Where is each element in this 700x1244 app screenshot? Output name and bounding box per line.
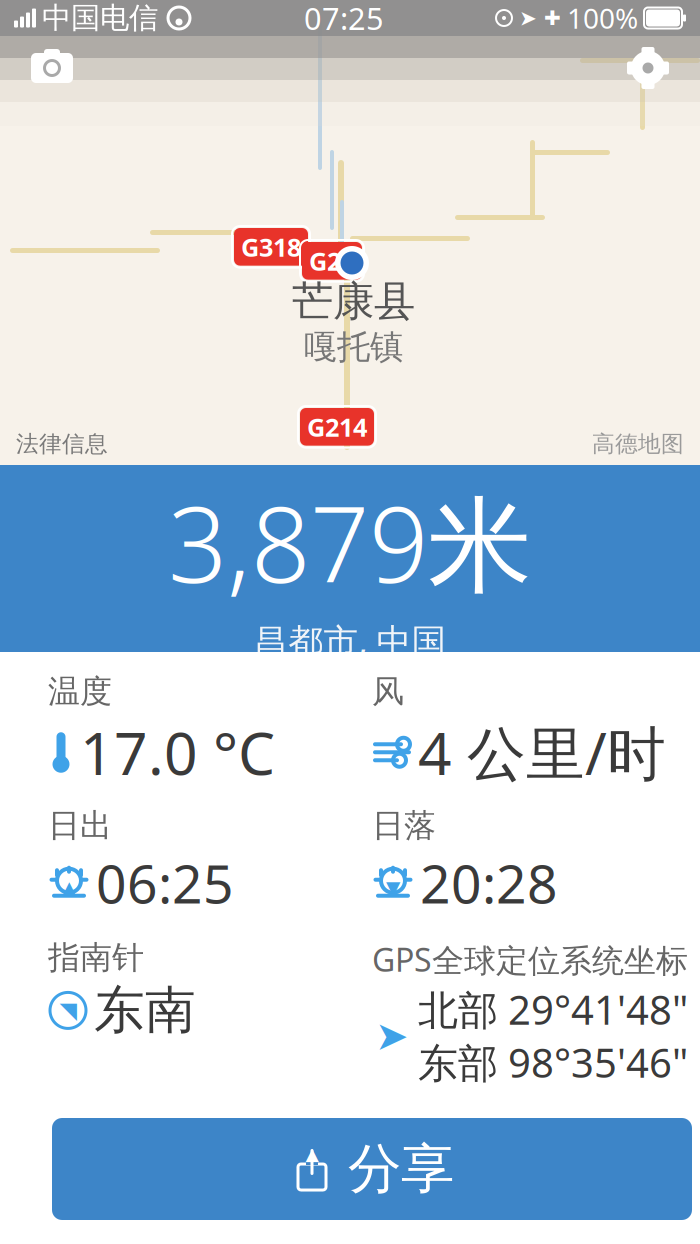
staticText: G214 bbox=[307, 410, 367, 444]
button[interactable]: ▲ bbox=[52, 1118, 692, 1220]
staticText: G318 bbox=[241, 230, 301, 264]
staticText: 东部 98°35'46" bbox=[418, 1036, 688, 1089]
staticText: 日出 bbox=[48, 806, 112, 845]
staticText: 指南针 bbox=[48, 938, 144, 977]
staticText: 昌都市, 中国 bbox=[253, 617, 446, 663]
staticText: 07:25 bbox=[304, 0, 384, 38]
staticText: 日落 bbox=[372, 806, 436, 845]
staticText: ➤ bbox=[375, 1013, 409, 1058]
staticText: ✚ bbox=[544, 7, 561, 29]
staticText: 北部 29°41'48" bbox=[418, 983, 688, 1036]
staticText: 东南 bbox=[94, 979, 196, 1041]
staticText: 法律信息 bbox=[16, 430, 108, 458]
staticText: 3,879米 bbox=[168, 473, 532, 611]
staticText: 风 bbox=[372, 672, 404, 711]
staticText: 芒康县 bbox=[292, 276, 415, 327]
staticText: 温度 bbox=[48, 672, 112, 711]
staticText: 17.0 °C bbox=[80, 713, 275, 791]
staticText: 06:25 bbox=[96, 847, 234, 918]
staticText: G21 bbox=[309, 244, 355, 278]
staticText: 4 公里/时 bbox=[418, 713, 666, 791]
staticText: ▲ bbox=[62, 877, 76, 898]
staticText: GPS全球定位系统坐标 bbox=[372, 938, 688, 981]
button[interactable]: Settings bbox=[620, 40, 676, 96]
staticText: 100% bbox=[567, 0, 638, 37]
staticText: ◥ bbox=[59, 998, 76, 1023]
staticText: ▲ bbox=[305, 1144, 318, 1164]
staticText: 20:28 bbox=[420, 847, 558, 918]
staticText: 高德地图 bbox=[592, 430, 684, 458]
button[interactable]: Camera bbox=[24, 40, 80, 96]
staticText: 中国电信 bbox=[42, 0, 158, 36]
staticText: 嘎托镇 bbox=[304, 327, 403, 368]
staticText: 分享 bbox=[348, 1136, 454, 1202]
staticText: ➤ bbox=[519, 6, 537, 30]
staticText: ▼ bbox=[386, 877, 400, 898]
